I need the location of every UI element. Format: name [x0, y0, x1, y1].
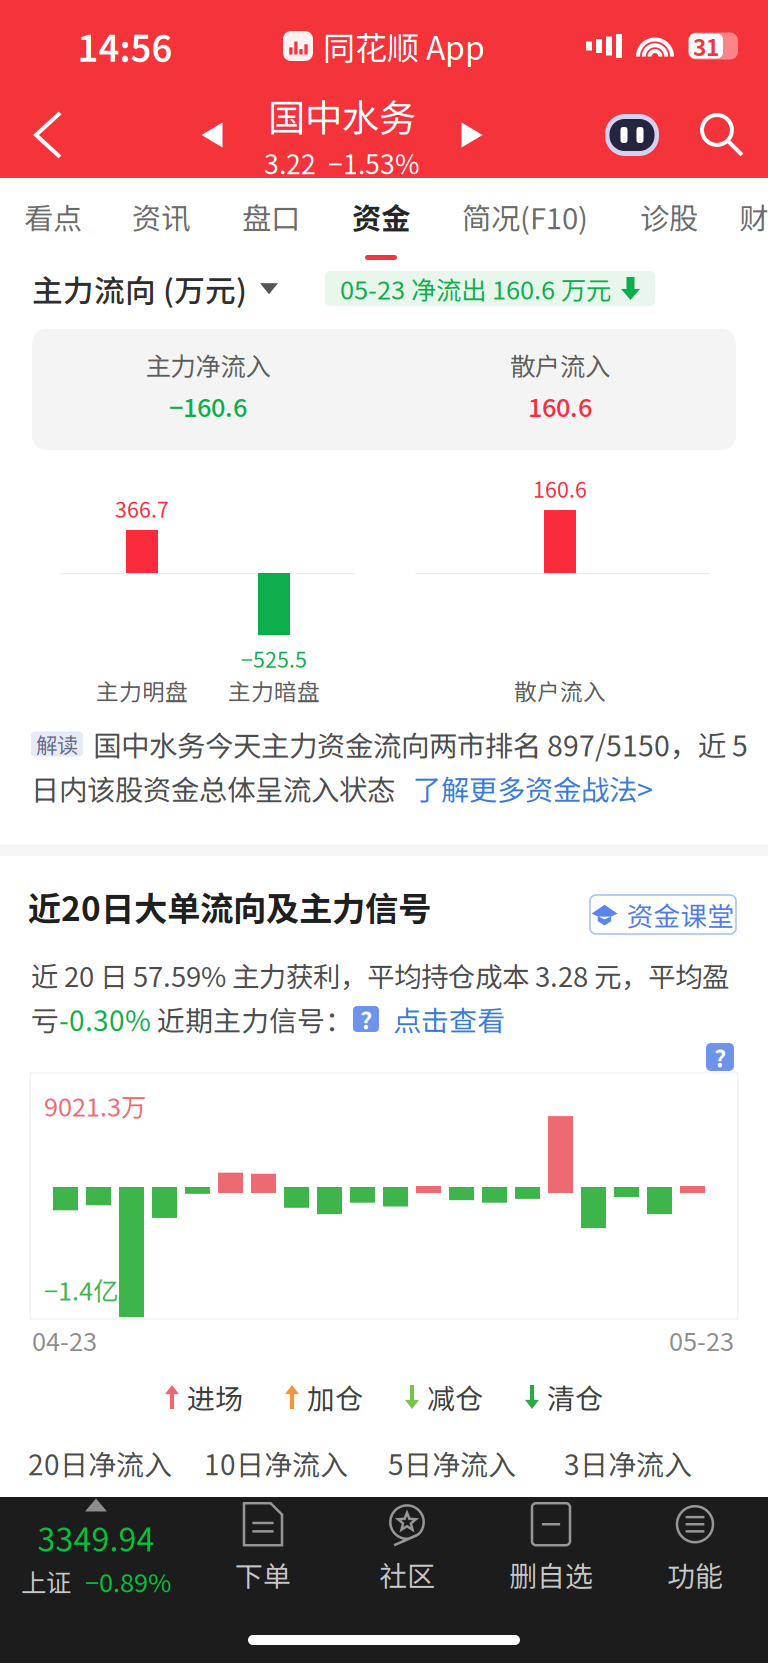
staticText: −0.89%: [85, 1563, 171, 1599]
button[interactable]: 财: [724, 178, 768, 262]
staticText: 点击查看: [393, 999, 505, 1039]
button[interactable]: 下单: [191, 1497, 335, 1601]
button[interactable]: 返回: [0, 92, 96, 178]
staticText: 160.6: [528, 388, 592, 424]
button[interactable]: 上一只股票: [177, 92, 247, 178]
staticText: 近 20 日 57.59% 主力获利，平均持仓成本 3.28 元，平均盈: [31, 955, 729, 995]
button[interactable]: 简况(F10): [436, 178, 614, 262]
button[interactable]: 智能助手: [588, 92, 676, 178]
staticText: 05-23 净流出 160.6 万元: [340, 270, 611, 307]
staticText: 散户流入: [514, 674, 606, 707]
staticText: 主力净流入: [145, 346, 270, 383]
button[interactable]: 资讯: [106, 178, 216, 262]
staticText: 近20日大单流向及主力信号: [28, 882, 431, 931]
button[interactable]: 看点: [0, 178, 106, 262]
staticText: 诊股: [640, 195, 698, 238]
staticText: 解读: [36, 729, 78, 759]
staticText: 下单: [235, 1554, 291, 1595]
staticText: 20日净流入: [28, 1443, 172, 1483]
button[interactable]: 社区: [335, 1497, 479, 1601]
staticText: -0.30%: [59, 999, 151, 1039]
button[interactable]: 下一只股票: [437, 92, 507, 178]
staticText: 3349.94: [37, 1514, 154, 1561]
button[interactable]: 图表说明: [706, 1043, 734, 1071]
staticText: 主力暗盘: [228, 674, 320, 707]
staticText: 看点: [24, 195, 82, 238]
staticText: 05-23: [669, 1322, 734, 1358]
button[interactable]: 删自选: [479, 1497, 623, 1601]
staticText: ?: [360, 1002, 372, 1036]
staticText: 日内该股资金总体呈流入状态: [31, 767, 395, 808]
staticText: 31: [693, 30, 719, 62]
button[interactable]: 主力信号说明: [353, 1006, 379, 1032]
staticText: 9021.3万: [44, 1087, 146, 1124]
button[interactable]: 搜索: [676, 92, 768, 178]
staticText: 资金: [352, 195, 410, 238]
staticText: 3.22 −1.53%: [264, 143, 420, 182]
staticText: 主力明盘: [96, 674, 188, 707]
staticText: 财: [739, 195, 768, 238]
staticText: −160.6: [169, 388, 247, 424]
staticText: 04-23: [32, 1322, 97, 1358]
staticText: 清仓: [547, 1377, 603, 1417]
staticText: 删自选: [509, 1554, 593, 1595]
staticText: 减仓: [427, 1377, 483, 1417]
staticText: 散户流入: [510, 346, 610, 383]
button[interactable]: 诊股: [614, 178, 724, 262]
staticText: 366.7: [115, 493, 169, 524]
button[interactable]: 资金: [326, 178, 436, 262]
button[interactable]: 了解更多资金战法>: [395, 766, 653, 810]
staticText: −1.4亿: [44, 1271, 118, 1308]
staticText: 资金课堂: [626, 895, 734, 934]
button[interactable]: 资金课堂: [590, 879, 736, 934]
staticText: 功能: [667, 1554, 723, 1595]
staticText: 简况(F10): [462, 195, 588, 238]
staticText: 进场: [187, 1377, 243, 1417]
button[interactable]: 盘口: [216, 178, 326, 262]
button[interactable]: 05-23 净流出 160.6 万元: [325, 262, 655, 315]
button[interactable]: 点击查看: [379, 997, 505, 1041]
button[interactable]: 上证指数: [1, 1497, 191, 1601]
staticText: 5日净流入: [388, 1443, 516, 1483]
staticText: 160.6: [533, 473, 587, 504]
staticText: 亏: [31, 999, 59, 1039]
staticText: 国中水务今天主力资金流向两市排名 897/5150，近 5: [93, 723, 748, 764]
staticText: 近期主力信号：: [151, 999, 353, 1039]
staticText: 盘口: [242, 195, 300, 238]
button[interactable]: 主力流向 (万元): [0, 266, 278, 310]
staticText: −525.5: [241, 643, 307, 674]
staticText: 加仓: [307, 1377, 363, 1417]
staticText: ?: [714, 1040, 726, 1074]
staticText: 同花顺 App: [323, 23, 485, 69]
staticText: 国中水务: [268, 88, 416, 142]
staticText: 10日净流入: [204, 1443, 348, 1483]
staticText: 主力流向 (万元): [32, 266, 247, 311]
staticText: 资讯: [132, 195, 190, 238]
button[interactable]: 功能: [623, 1497, 767, 1601]
staticText: 社区: [379, 1554, 435, 1595]
staticText: 了解更多资金战法>: [413, 767, 653, 808]
staticText: 上证: [21, 1563, 71, 1599]
staticText: 14:56: [77, 20, 172, 72]
staticText: 3日净流入: [564, 1443, 692, 1483]
